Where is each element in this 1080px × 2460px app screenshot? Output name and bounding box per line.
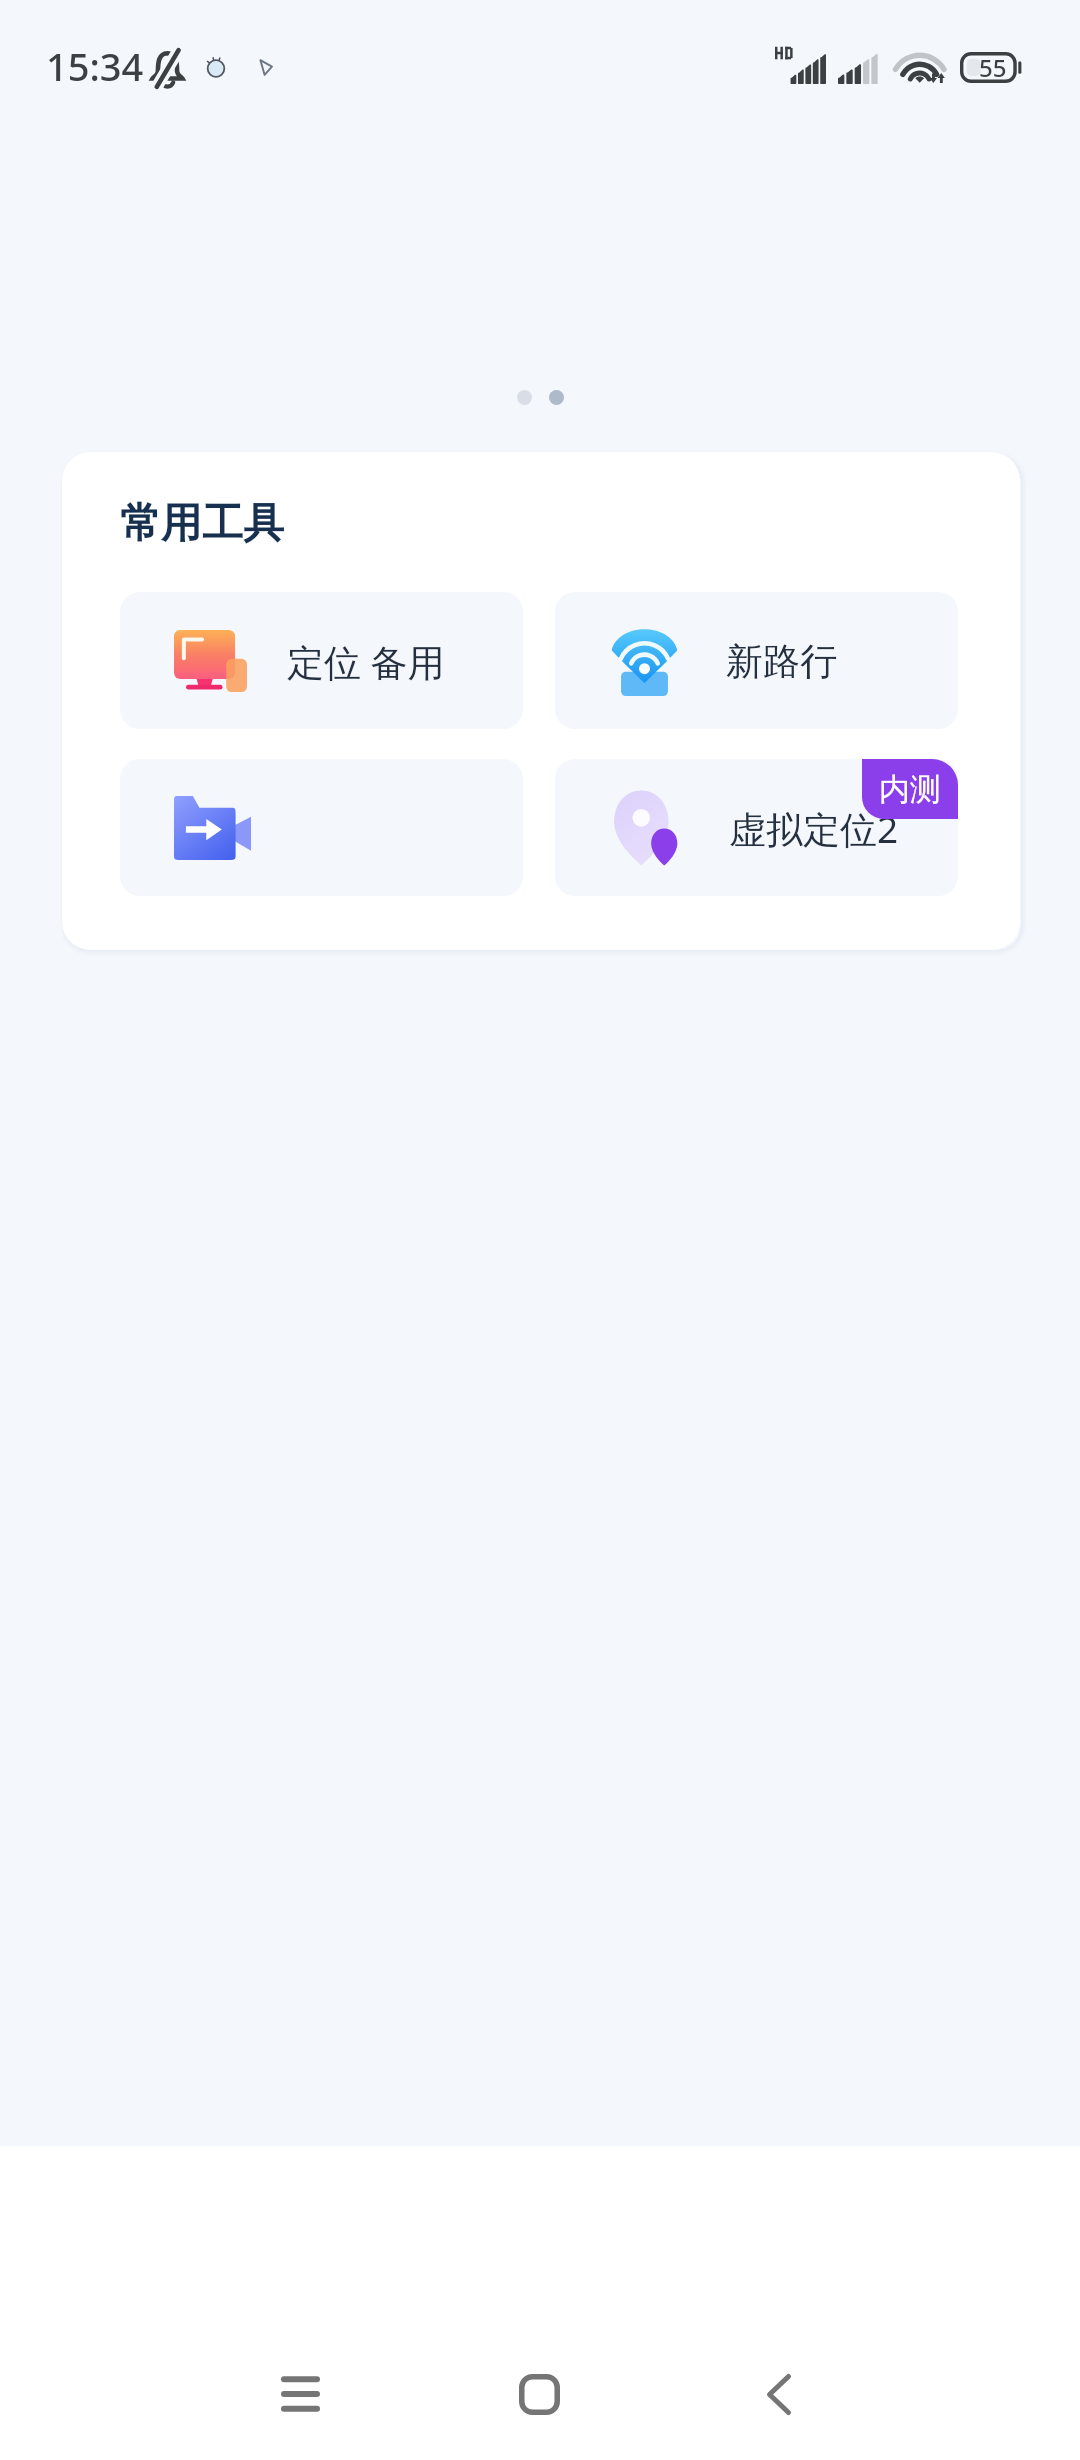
- button[interactable]: Recents: [240, 2339, 360, 2449]
- staticText: 55: [979, 51, 1007, 82]
- button[interactable]: Back: [719, 2339, 839, 2449]
- staticText: 常用工具: [120, 498, 284, 550]
- staticText: 15:34: [46, 40, 144, 92]
- staticText: 新路行: [726, 638, 837, 685]
- button[interactable]: 定位 备用: [120, 592, 523, 729]
- button[interactable]: 虚拟定位2: [555, 759, 958, 896]
- staticText: 内测: [879, 770, 941, 809]
- button[interactable]: Home: [479, 2339, 599, 2449]
- staticText: 定位 备用: [287, 636, 445, 687]
- button[interactable]: 新路行: [555, 592, 958, 729]
- button[interactable]: [120, 759, 523, 896]
- staticText: 虚拟定位2: [729, 803, 899, 854]
